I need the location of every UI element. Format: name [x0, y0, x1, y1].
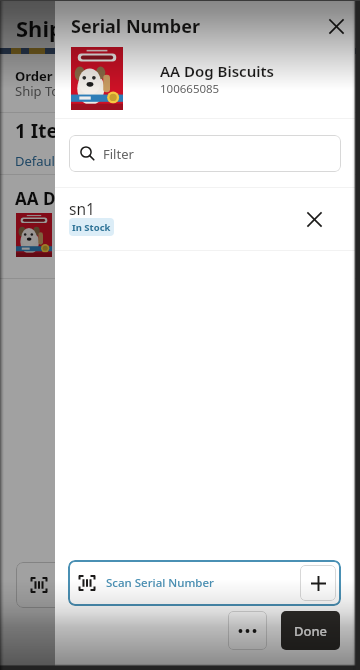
button[interactable]: Filter — [69, 135, 341, 172]
staticText: AA Dog Biscuits — [15, 187, 147, 210]
staticText: Done — [294, 622, 328, 640]
staticText: 100665085 — [160, 81, 220, 97]
button[interactable]: Add serial number — [300, 565, 336, 601]
staticText: 1 Item — [15, 118, 77, 144]
staticText: Scan Serial Number — [106, 575, 214, 591]
staticText: Ship To … — [15, 82, 73, 100]
button[interactable]: Scan Serial Number — [68, 560, 341, 606]
button[interactable]: sn1 — [55, 188, 355, 250]
staticText: Shipping — [16, 13, 112, 43]
button[interactable]: Scan — [16, 562, 62, 608]
staticText: Filter — [103, 145, 134, 163]
button[interactable]: Close — [321, 11, 351, 41]
button[interactable]: Done — [281, 611, 340, 650]
button[interactable]: More options — [228, 611, 267, 650]
staticText: AA Dog Biscuits — [160, 61, 274, 81]
staticText: Default… — [15, 152, 70, 170]
staticText: In Stock — [72, 221, 111, 234]
staticText: Serial Number — [71, 14, 200, 39]
staticText: Order 6… — [15, 67, 75, 85]
staticText: sn1 — [69, 198, 95, 219]
button[interactable]: Remove serial number — [299, 204, 329, 234]
